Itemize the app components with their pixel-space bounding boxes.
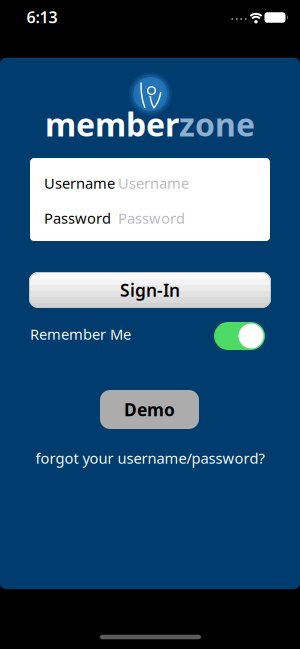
button[interactable]: Username — [44, 165, 270, 200]
staticText: Remember Me — [30, 324, 131, 344]
button[interactable]: Sign-In — [29, 272, 271, 308]
staticText: forgot your username/password? — [35, 448, 264, 468]
button[interactable]: forgot your username/password? — [35, 448, 264, 468]
staticText: member — [45, 103, 179, 145]
staticText: Username — [118, 173, 189, 193]
staticText: zone — [179, 103, 255, 145]
button[interactable]: Password — [44, 200, 270, 235]
staticText: 6:13 — [26, 6, 57, 28]
staticText: Password — [44, 208, 111, 228]
staticText: Demo — [124, 398, 175, 421]
button[interactable]: Demo — [100, 390, 199, 429]
staticText: Username — [44, 173, 115, 193]
staticText: Password — [118, 208, 185, 228]
staticText: Sign-In — [120, 278, 180, 301]
button[interactable]: Remember Me — [214, 322, 265, 350]
